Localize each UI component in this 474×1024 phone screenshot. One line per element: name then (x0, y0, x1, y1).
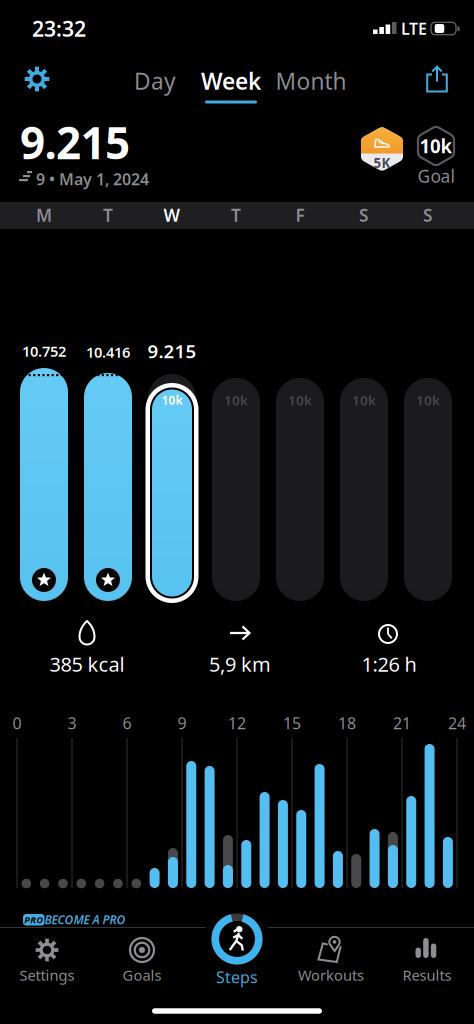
staticText: 9.215 (147, 339, 196, 363)
button[interactable]: 10k (0, 0, 474, 1024)
staticText: Workouts (298, 965, 364, 985)
staticText: 10k (419, 134, 452, 158)
button[interactable] (0, 0, 474, 1024)
button[interactable]: 10k (0, 0, 474, 1024)
button[interactable]: 10k (0, 0, 474, 1024)
staticText: Results (402, 965, 451, 985)
staticText: 6 (122, 712, 131, 734)
staticText: Day (134, 66, 176, 96)
staticText: 10k (288, 391, 312, 409)
staticText: Week (201, 66, 261, 96)
staticText: 9.215 (20, 113, 130, 171)
staticText: LTE (401, 18, 427, 39)
staticText: 1:26 h (361, 651, 416, 677)
staticText: Steps (216, 966, 258, 988)
button[interactable]: Results (0, 0, 474, 1024)
button[interactable]: 10k (0, 0, 474, 1024)
button[interactable] (0, 0, 474, 1024)
staticText: Month (275, 66, 346, 96)
staticText: BECOME A PRO (44, 911, 125, 927)
staticText: S (423, 203, 433, 226)
staticText: 9 • May 1, 2024 (36, 168, 149, 190)
staticText: 5,9 km (209, 651, 271, 677)
staticText: 9 (177, 712, 186, 734)
button[interactable]: Workouts (0, 0, 474, 1024)
staticText: Settings (19, 965, 74, 985)
staticText: 10k (161, 392, 182, 408)
staticText: 21 (393, 712, 411, 734)
staticText: 5K (373, 154, 390, 172)
button[interactable]: Settings (0, 0, 474, 1024)
button[interactable]: Goals (0, 0, 474, 1024)
staticText: 10.752 (22, 341, 66, 361)
staticText: T (103, 203, 113, 226)
staticText: 23:32 (32, 14, 86, 43)
staticText: 24 (448, 712, 466, 734)
staticText: 10k (416, 391, 440, 409)
staticText: 18 (338, 712, 356, 734)
staticText: 385 kcal (49, 651, 124, 677)
staticText: S (359, 203, 369, 226)
staticText: 15 (283, 712, 301, 734)
button[interactable]: Day (0, 0, 474, 1024)
staticText: Goal (417, 164, 454, 187)
staticText: M (36, 203, 52, 226)
button[interactable]: Month (0, 0, 474, 1024)
button[interactable]: 10k (0, 0, 474, 1024)
button[interactable]: PRO (0, 0, 474, 1024)
staticText: PRO (24, 913, 43, 926)
staticText: 10k (352, 391, 376, 409)
staticText: F (295, 203, 304, 226)
button[interactable] (0, 0, 474, 1024)
staticText: Goals (122, 965, 161, 985)
staticText: 0 (12, 712, 21, 734)
staticText: 10.416 (86, 342, 130, 362)
button[interactable]: Week (0, 0, 474, 1024)
staticText: 10k (224, 391, 248, 409)
staticText: W (163, 203, 180, 226)
staticText: 3 (67, 712, 76, 734)
button[interactable]: Steps (0, 0, 474, 1024)
button[interactable] (0, 0, 474, 1024)
staticText: T (231, 203, 241, 226)
staticText: 12 (228, 712, 246, 734)
